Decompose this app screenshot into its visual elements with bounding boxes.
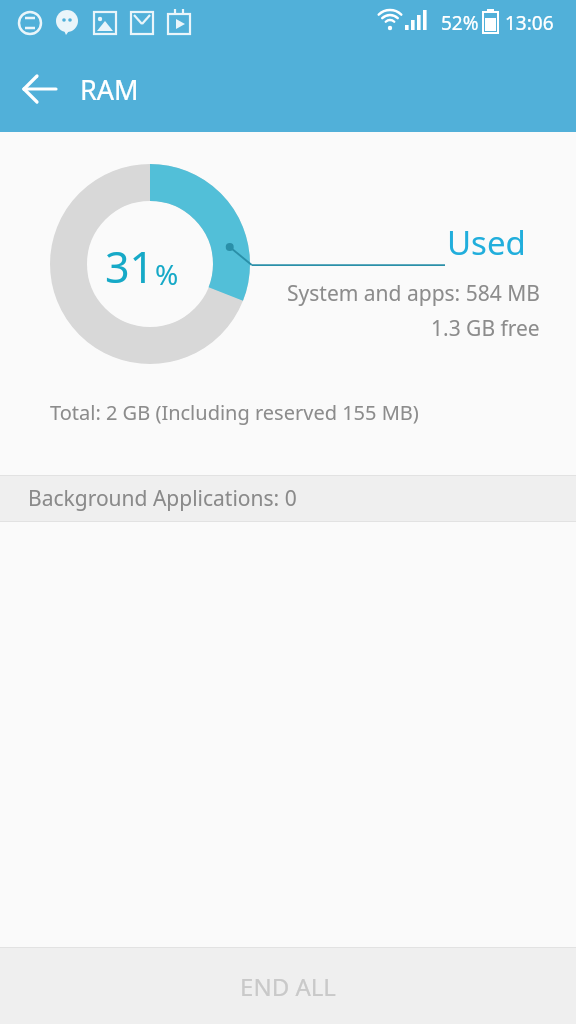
staticText: % [155,255,179,293]
staticText: 31 [105,237,155,296]
staticText: System and apps: 584 MB [287,279,540,308]
staticText: 52% [441,10,479,36]
staticText: Total: 2 GB (Including reserved 155 MB) [50,399,419,426]
staticText: Used [447,220,526,265]
staticText: 1.3 GB free [431,314,540,343]
staticText: END ALL [240,970,336,1003]
staticText: Background Applications: 0 [28,484,297,513]
button[interactable]: Back [14,63,66,115]
button[interactable]: END ALL [0,948,576,1024]
staticText: 13:06 [505,10,554,36]
staticText: RAM [80,71,139,108]
